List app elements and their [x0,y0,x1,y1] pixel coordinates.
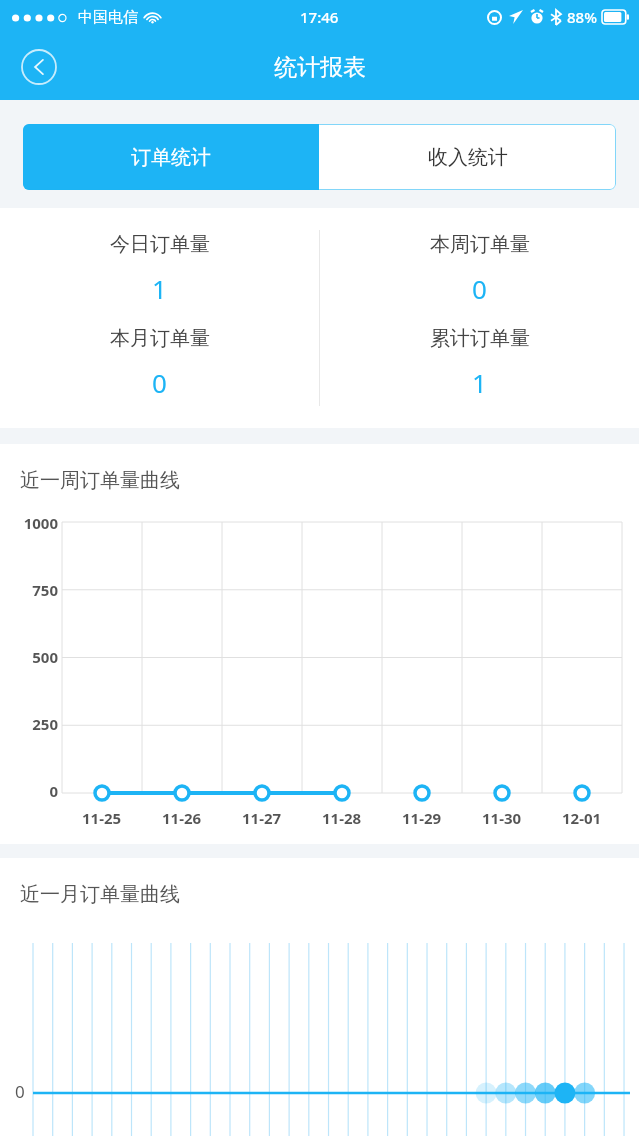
staticText: 11-30 [482,808,522,828]
staticText: 11-28 [322,808,362,828]
staticText: 12-01 [562,808,602,828]
staticText: 250 [32,714,58,734]
staticText: 11-27 [242,808,282,828]
staticText: 订单统计 [131,145,211,170]
staticText: 累计订单量 [430,326,530,351]
staticText: 本月订单量 [110,326,210,351]
staticText: 统计报表 [274,53,366,82]
staticText: 11-25 [82,808,122,828]
button[interactable]: 订单统计 [23,124,319,190]
staticText: 0 [15,1080,25,1103]
staticText: 750 [32,580,58,600]
staticText: 1 [152,271,167,306]
staticText: 今日订单量 [110,232,210,257]
staticText: 近一周订单量曲线 [20,468,180,493]
staticText: 收入统计 [428,145,508,170]
staticText: 中国电信 [78,8,138,27]
staticText: 0 [152,365,167,400]
staticText: 1000 [23,513,58,533]
staticText: 0 [472,271,487,306]
staticText: 近一月订单量曲线 [20,882,180,907]
staticText: 88% [567,7,597,27]
staticText: 本周订单量 [430,232,530,257]
staticText: 1 [472,365,487,400]
staticText: 17:46 [300,7,339,27]
button[interactable]: Back [16,44,62,90]
staticText: 0 [49,781,58,801]
button[interactable]: 收入统计 [319,124,616,190]
staticText: 500 [32,647,58,667]
staticText: 11-26 [162,808,202,828]
staticText: 11-29 [402,808,442,828]
